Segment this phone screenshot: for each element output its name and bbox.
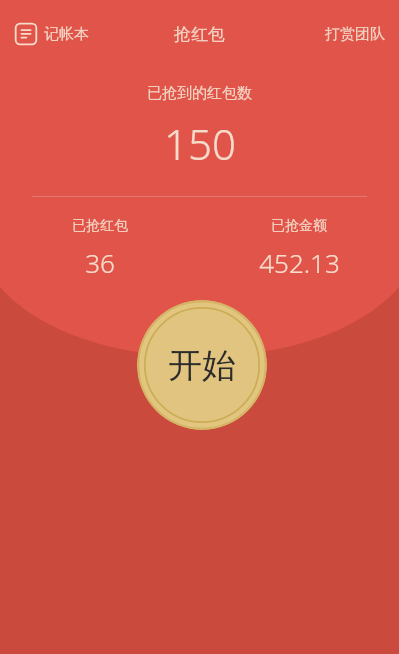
staticText: 已抢到的红包数 — [147, 84, 252, 103]
button[interactable]: 开始 — [137, 300, 267, 430]
staticText: 记帐本 — [44, 25, 89, 44]
button[interactable]: 已抢金额 — [199, 217, 399, 280]
button[interactable]: 已抢红包 — [0, 217, 199, 280]
staticText: 已抢红包 — [72, 217, 128, 235]
staticText: 开始 — [168, 344, 236, 387]
staticText: 452.13 — [259, 245, 340, 280]
button[interactable]: 记帐本 — [12, 16, 91, 52]
button[interactable]: 抢红包 — [166, 18, 233, 51]
staticText: 150 — [164, 115, 236, 172]
staticText: 抢红包 — [174, 24, 225, 45]
staticText: 已抢金额 — [271, 217, 327, 235]
staticText: 打赏团队 — [325, 25, 385, 44]
button[interactable]: 打赏团队 — [321, 19, 389, 50]
staticText: 36 — [85, 245, 115, 280]
